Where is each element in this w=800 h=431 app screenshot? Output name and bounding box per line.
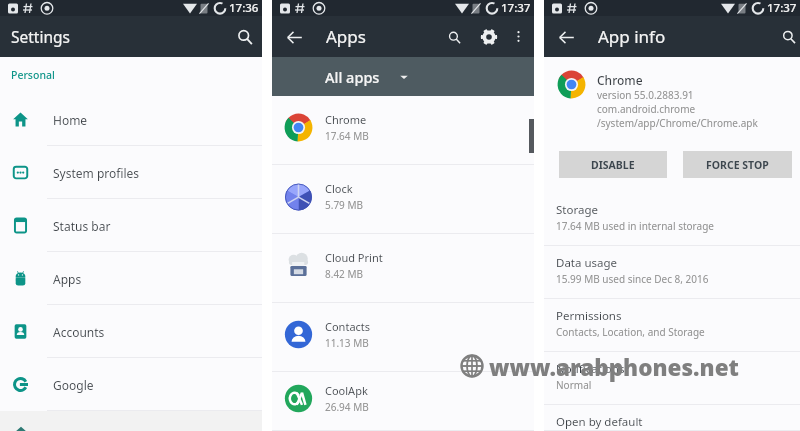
staticText: Chrome bbox=[325, 112, 367, 127]
staticText: www.arabphones.net bbox=[489, 352, 739, 383]
staticText: version 55.0.2883.91 bbox=[597, 88, 694, 102]
button[interactable]: Status bar bbox=[0, 199, 262, 252]
staticText: 17:36 bbox=[229, 0, 259, 16]
staticText: Accounts bbox=[53, 324, 105, 340]
button[interactable]: DISABLE bbox=[559, 151, 667, 178]
staticText: com.android.chrome bbox=[597, 102, 696, 116]
staticText: System profiles bbox=[53, 165, 140, 181]
staticText: Chrome bbox=[597, 72, 643, 88]
staticText: 5.79 MB bbox=[325, 198, 364, 212]
staticText: All apps bbox=[325, 67, 380, 87]
button[interactable]: Storage bbox=[544, 193, 800, 246]
button[interactable]: Accounts bbox=[0, 305, 262, 358]
staticText: Apps bbox=[53, 271, 82, 287]
staticText: DISABLE bbox=[591, 158, 635, 172]
staticText: Contacts, Location, and Storage bbox=[556, 325, 705, 339]
button[interactable]: Home bbox=[0, 93, 262, 146]
button[interactable]: Cloud Print bbox=[272, 234, 534, 303]
staticText: Clock bbox=[325, 181, 353, 196]
button[interactable]: Apps bbox=[0, 252, 262, 305]
staticText: Contacts bbox=[325, 319, 371, 334]
button[interactable]: Clock bbox=[272, 165, 534, 234]
button[interactable]: Settings bbox=[474, 22, 504, 52]
staticText: App info bbox=[598, 25, 666, 48]
staticText: Cloud Print bbox=[325, 250, 383, 265]
button[interactable]: Search bbox=[230, 22, 260, 52]
staticText: Status bar bbox=[53, 218, 111, 234]
button[interactable]: System profiles bbox=[0, 146, 262, 199]
staticText: 17.64 MB bbox=[325, 129, 369, 143]
button[interactable]: Data usage bbox=[544, 246, 800, 299]
button[interactable]: Search bbox=[774, 22, 800, 52]
staticText: FORCE STOP bbox=[706, 158, 769, 172]
staticText: Apps bbox=[326, 25, 366, 48]
staticText: Permissions bbox=[556, 308, 622, 324]
staticText: 8.42 MB bbox=[325, 267, 364, 281]
staticText: Storage bbox=[556, 202, 598, 218]
staticText: Data usage bbox=[556, 255, 618, 271]
staticText: Notifications bbox=[556, 361, 625, 377]
button[interactable]: Search bbox=[439, 22, 469, 52]
staticText: Settings bbox=[11, 26, 70, 47]
staticText: 15.99 MB used since Dec 8, 2016 bbox=[556, 272, 709, 286]
button[interactable]: More options bbox=[505, 23, 532, 50]
button[interactable]: Google bbox=[0, 358, 262, 411]
staticText: 17.64 MB used in internal storage bbox=[556, 219, 714, 233]
staticText: Home bbox=[53, 112, 88, 128]
staticText: 11.13 MB bbox=[325, 336, 369, 350]
staticText: Google bbox=[53, 377, 94, 393]
button[interactable]: FORCE STOP bbox=[683, 151, 792, 178]
button[interactable]: Back bbox=[551, 22, 581, 52]
staticText: 26.94 MB bbox=[325, 400, 369, 414]
staticText: /system/app/Chrome/Chrome.apk bbox=[597, 116, 758, 130]
staticText: 17:37 bbox=[767, 0, 797, 16]
button[interactable]: Permissions bbox=[544, 299, 800, 352]
button[interactable]: All apps bbox=[272, 57, 534, 96]
staticText: Personal bbox=[11, 68, 55, 82]
button[interactable]: Contacts bbox=[272, 303, 534, 372]
button[interactable]: Back bbox=[279, 22, 309, 52]
button[interactable]: Notifications bbox=[544, 352, 800, 405]
staticText: 17:37 bbox=[501, 0, 531, 16]
button[interactable]: CoolApk bbox=[272, 372, 534, 431]
button[interactable]: Open by default bbox=[544, 405, 800, 431]
staticText: Open by default bbox=[556, 414, 643, 430]
staticText: CoolApk bbox=[325, 383, 368, 398]
button[interactable]: Chrome bbox=[272, 96, 534, 165]
staticText: Normal bbox=[556, 378, 592, 392]
